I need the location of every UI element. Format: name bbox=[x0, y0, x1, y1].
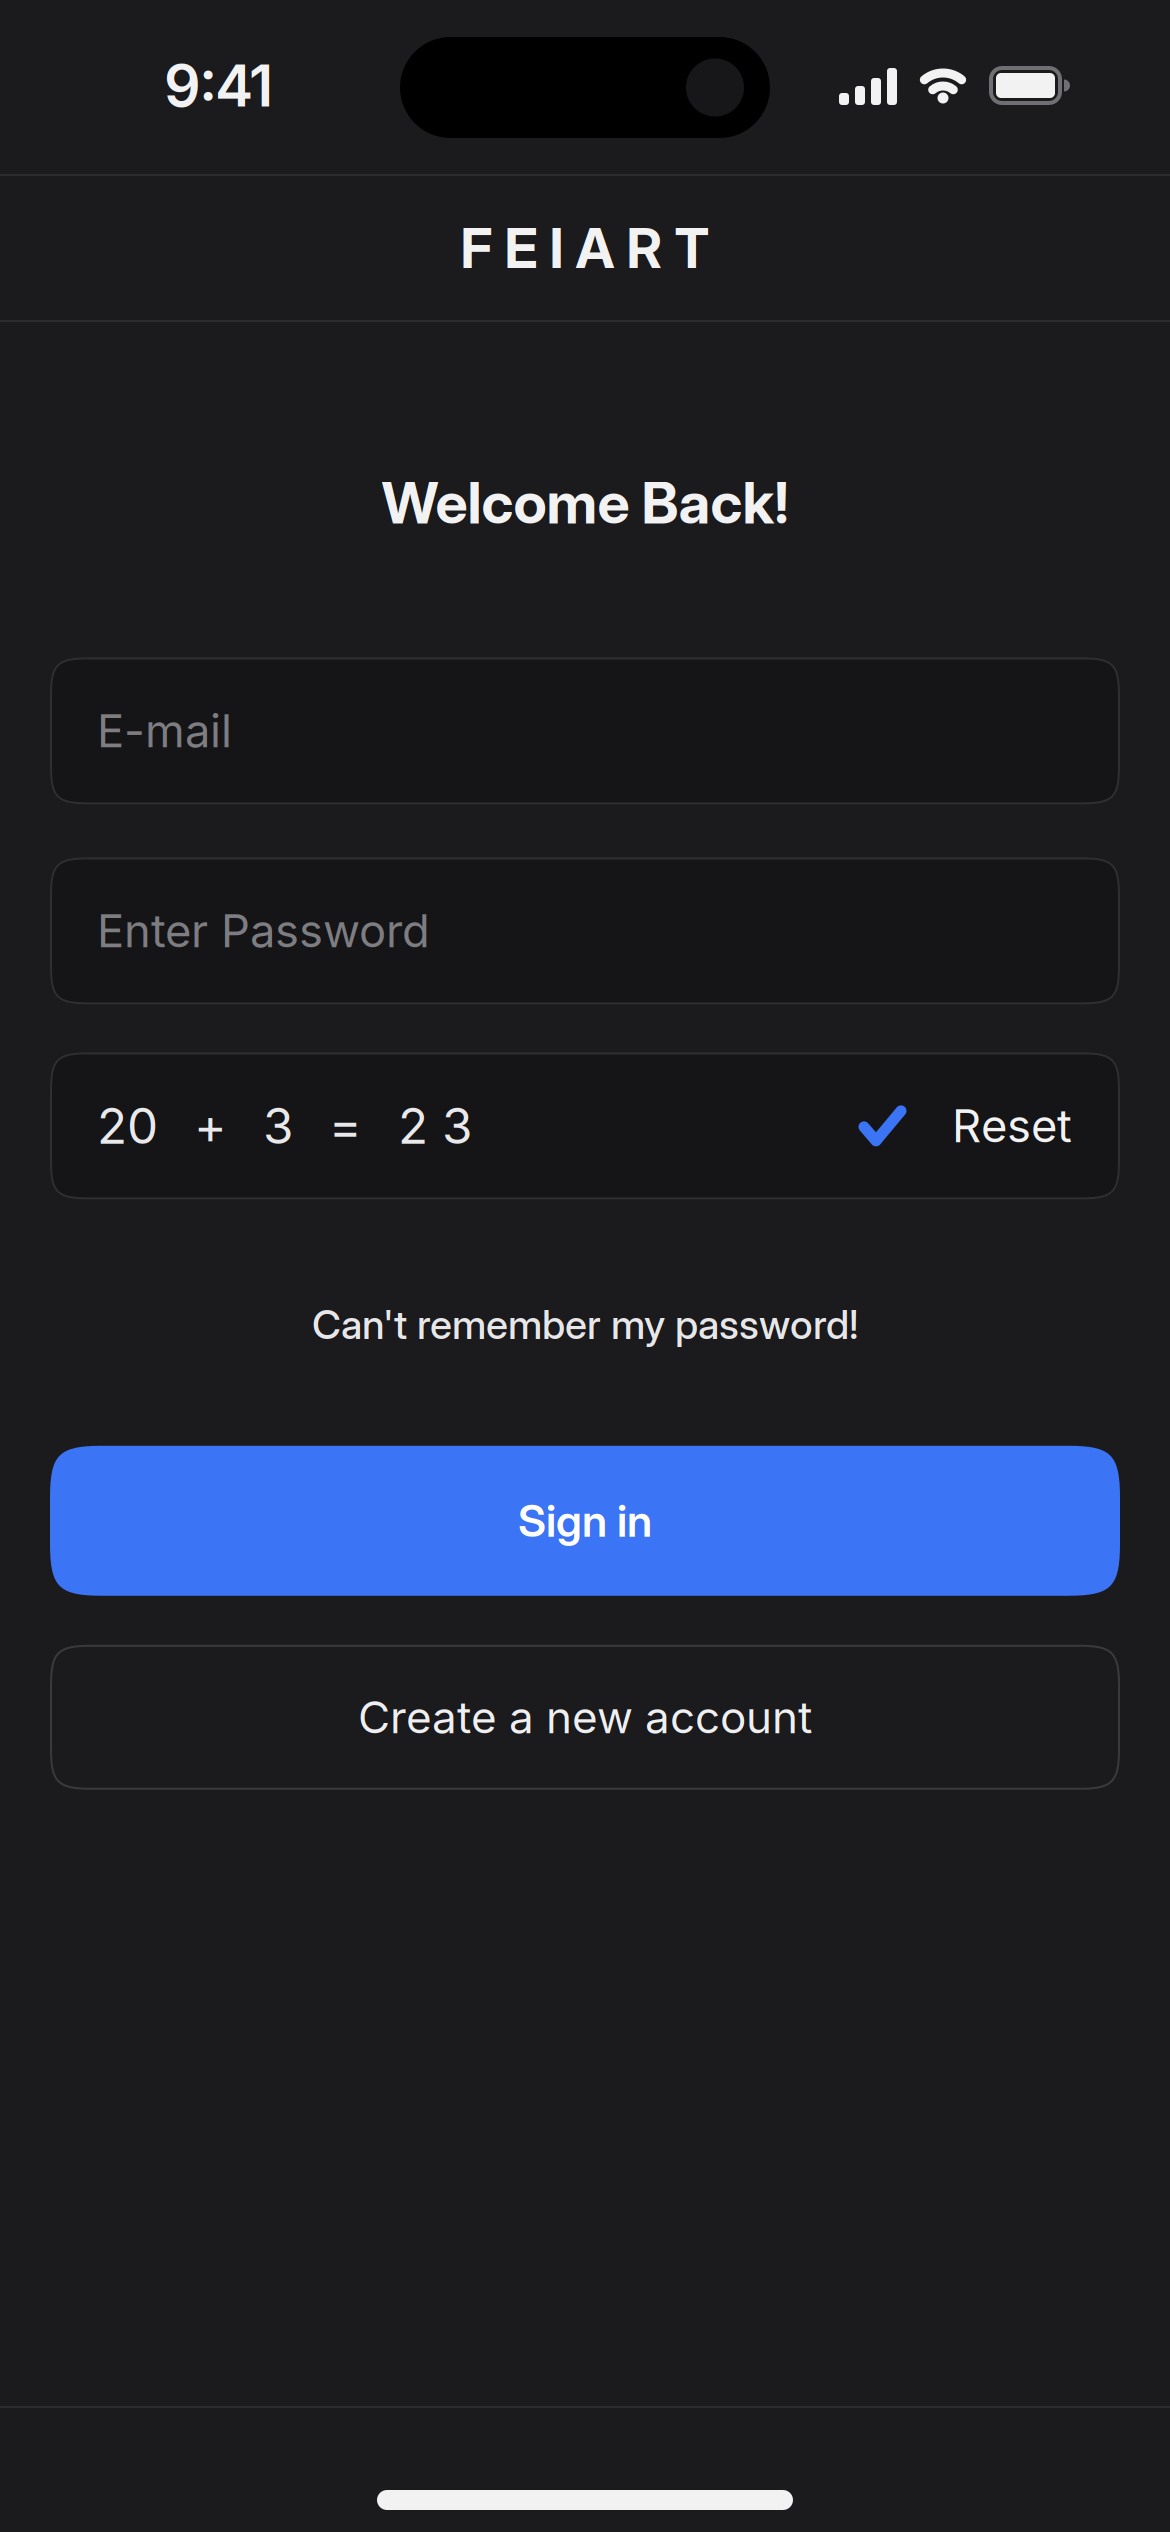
staticText: Reset bbox=[952, 1098, 1072, 1153]
staticText: 9:41 bbox=[164, 51, 273, 120]
button[interactable]: Can't remember my password! bbox=[312, 1300, 858, 1349]
staticText: Can't remember my password! bbox=[312, 1300, 858, 1349]
button[interactable]: Reset bbox=[904, 1098, 1120, 1153]
staticText: T bbox=[674, 215, 709, 281]
staticText: Enter Password bbox=[97, 903, 430, 958]
staticText: R bbox=[626, 215, 662, 281]
staticText: = bbox=[329, 1096, 362, 1156]
staticText: F bbox=[460, 215, 492, 281]
staticText: E bbox=[504, 215, 537, 281]
staticText: E-mail bbox=[97, 703, 232, 758]
staticText: 3 bbox=[263, 1096, 293, 1156]
staticText: 20 bbox=[97, 1096, 158, 1156]
staticText: A bbox=[575, 215, 614, 281]
staticText: Create a new account bbox=[358, 1691, 812, 1744]
button[interactable]: Sign in bbox=[0, 1446, 1170, 1596]
button[interactable]: Enter Password bbox=[0, 857, 1170, 1004]
staticText: + bbox=[194, 1096, 227, 1156]
staticText: 2 bbox=[398, 1096, 428, 1156]
staticText: 3 bbox=[442, 1096, 472, 1156]
button[interactable]: E-mail bbox=[0, 657, 1170, 804]
button[interactable]: Create a new account bbox=[0, 1645, 1170, 1790]
staticText: Sign in bbox=[518, 1494, 652, 1547]
staticText: I bbox=[549, 215, 563, 281]
staticText: Welcome Back! bbox=[381, 468, 788, 537]
